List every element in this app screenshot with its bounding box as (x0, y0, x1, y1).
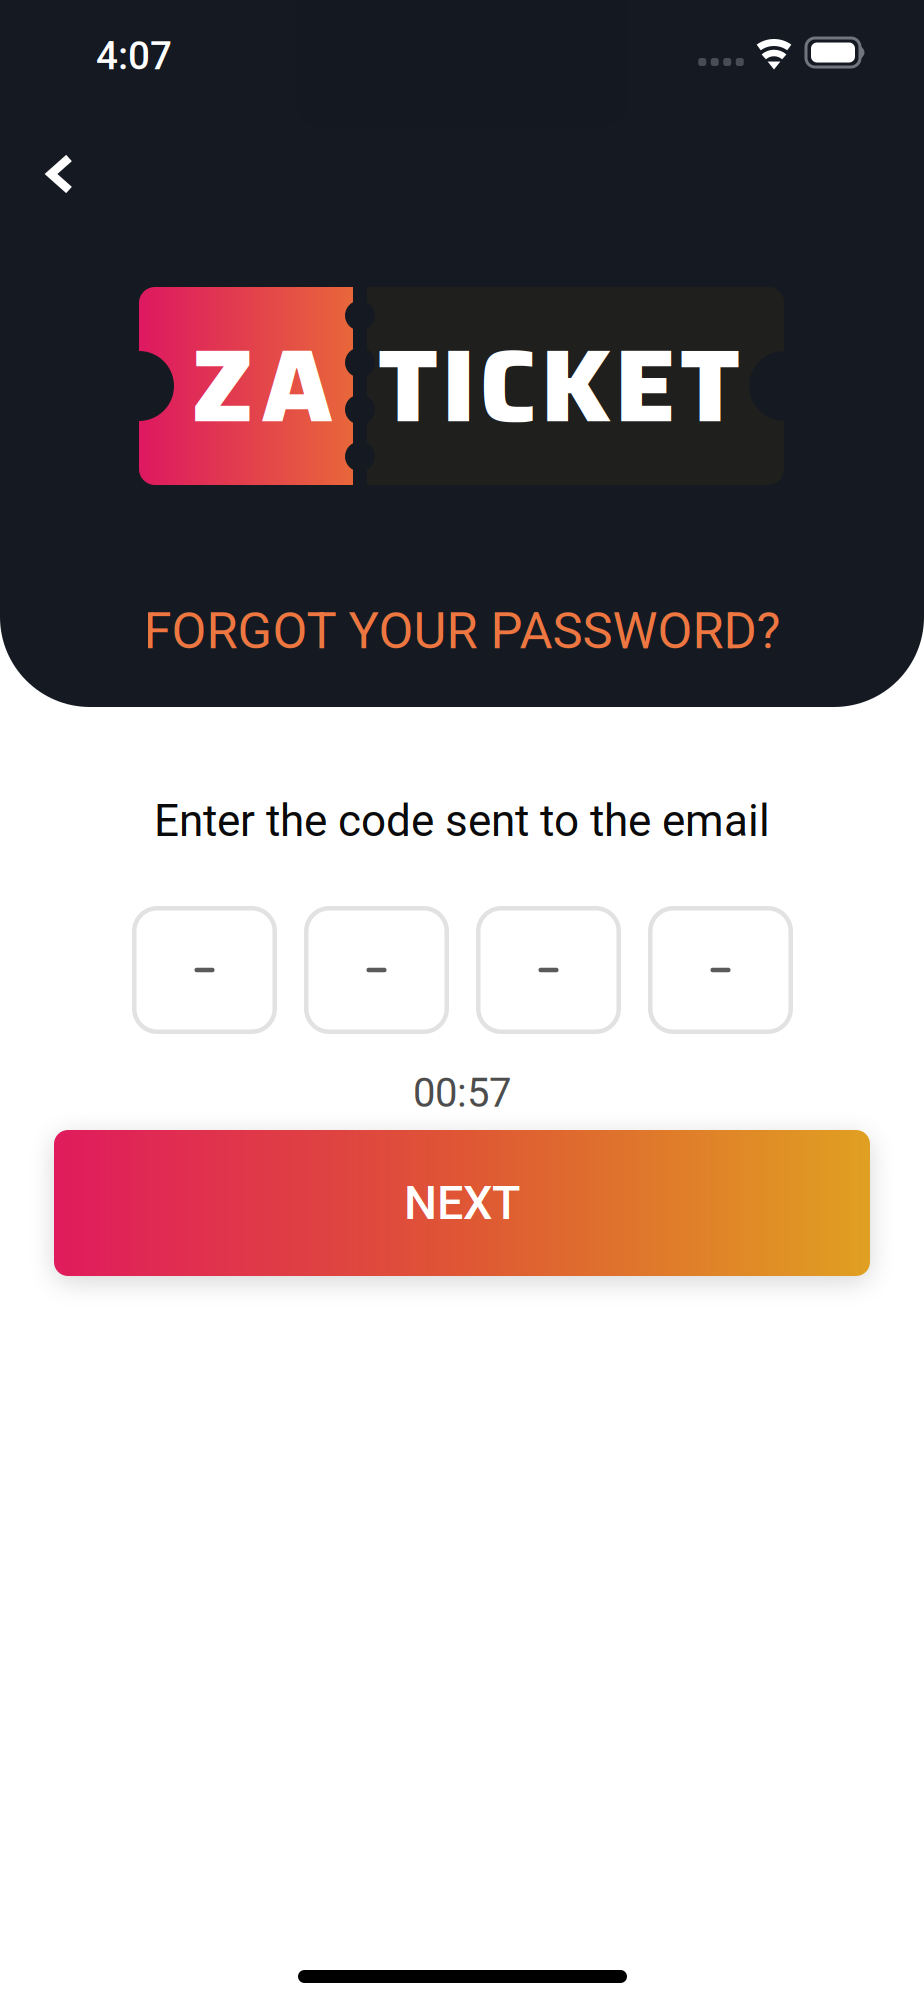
staticText: Enter the code sent to the email (154, 795, 770, 847)
button[interactable]: Code digit 4 (648, 906, 793, 1034)
staticText: 4:07 (96, 33, 172, 79)
button[interactable]: Code digit 1 (132, 906, 277, 1034)
staticText: ZA (191, 306, 332, 466)
button[interactable]: Back (12, 126, 108, 222)
button[interactable]: Code digit 2 (304, 906, 449, 1034)
button[interactable]: NEXT (54, 1130, 870, 1276)
staticText: TICKET (378, 306, 740, 466)
button[interactable]: Code digit 3 (476, 906, 621, 1034)
staticText: NEXT (404, 1176, 520, 1230)
staticText: 00:57 (413, 1070, 511, 1116)
staticText: FORGOT YOUR PASSWORD? (143, 601, 780, 661)
